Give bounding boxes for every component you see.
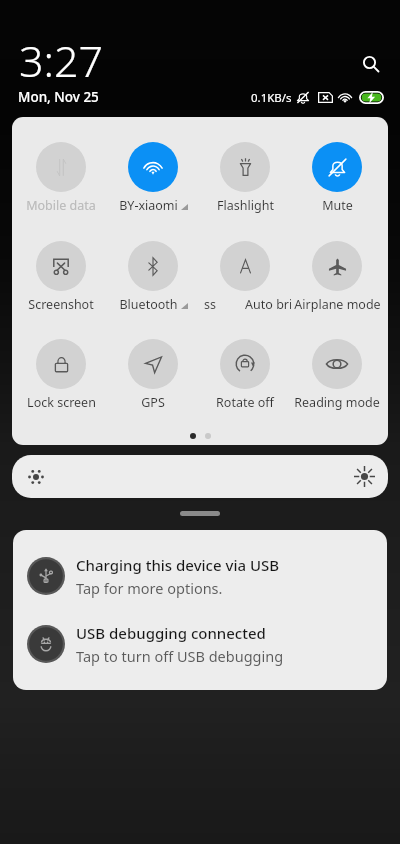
staticText: ss [204,296,216,312]
staticText: Reading mode [294,394,380,411]
button[interactable]: Search [356,49,386,79]
staticText: USB debugging connected [76,623,266,643]
button[interactable]: Bluetooth [107,241,199,313]
staticText: 0.1KB/s [251,90,292,106]
staticText: Lock screen [27,394,96,411]
staticText: Rotate off [216,394,274,411]
button[interactable]: Charging this device via USB [13,542,387,610]
button[interactable]: ss [199,241,291,312]
staticText: Mobile data [26,197,96,214]
button[interactable]: Brightness [12,455,388,498]
staticText: Auto brightness [245,296,291,312]
button[interactable]: Mute [291,142,383,214]
staticText: GPS [141,394,165,411]
button[interactable]: Mobile data [15,142,107,214]
staticText: Tap to turn off USB debugging [76,646,284,666]
button[interactable]: Screenshot [15,241,107,313]
button[interactable]: Airplane mode [291,241,383,313]
button[interactable]: Lock screen [15,339,107,411]
button[interactable]: Reading mode [291,339,383,411]
staticText: Tap for more options. [76,578,223,598]
button[interactable]: Flashlight [199,142,291,214]
button[interactable]: GPS [107,339,199,411]
staticText: Mute [322,197,353,214]
button[interactable]: Rotate off [199,339,291,411]
button[interactable]: USB debugging connected [13,610,387,678]
staticText: Airplane mode [294,296,381,313]
staticText: Screenshot [28,296,94,313]
staticText: Mon, Nov 25 [18,88,99,106]
staticText: Bluetooth [119,296,178,313]
staticText: Flashlight [217,197,274,214]
staticText: Charging this device via USB [76,555,280,575]
staticText: 3:27 [19,31,104,90]
staticText: BY-xiaomi [119,197,178,214]
button[interactable]: BY-xiaomi [107,142,199,214]
